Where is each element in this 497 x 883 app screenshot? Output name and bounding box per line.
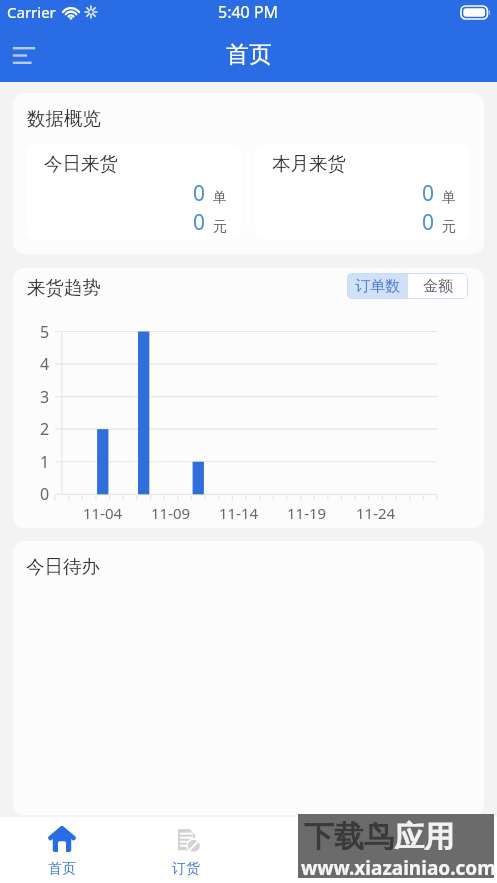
staticText: 订货 bbox=[172, 860, 200, 878]
staticText: 今日待办 bbox=[26, 555, 100, 578]
staticText: 11-24 bbox=[356, 503, 396, 523]
staticText: 来货趋势 bbox=[27, 276, 101, 299]
staticText: 首页 bbox=[48, 860, 76, 878]
staticText: 5 bbox=[40, 321, 50, 343]
button[interactable]: 订货 bbox=[124, 817, 248, 883]
button[interactable]: 首页 bbox=[0, 817, 124, 883]
staticText: 0 bbox=[422, 208, 435, 237]
staticText: 11-09 bbox=[151, 503, 191, 523]
staticText: 订单数 bbox=[355, 277, 400, 296]
staticText: 0 bbox=[193, 179, 206, 208]
staticText: 4 bbox=[40, 353, 50, 375]
staticText: 5:40 PM bbox=[218, 1, 279, 23]
staticText: 首页 bbox=[226, 40, 272, 69]
staticText: 本月来货 bbox=[272, 152, 346, 175]
staticText: 11-04 bbox=[83, 503, 123, 523]
staticText: 单 bbox=[442, 189, 456, 207]
button[interactable]: 本月来货 bbox=[255, 144, 470, 239]
button[interactable]: Menu bbox=[2, 33, 46, 77]
staticText: 元 bbox=[213, 218, 227, 236]
staticText: Carrier bbox=[7, 2, 56, 22]
staticText: 今日来货 bbox=[44, 152, 118, 175]
staticText: 1 bbox=[40, 451, 50, 473]
staticText: 11-14 bbox=[219, 503, 259, 523]
staticText: www.xiazainiao.com bbox=[301, 855, 496, 881]
staticText: 11-19 bbox=[287, 503, 327, 523]
staticText: 数据概览 bbox=[27, 107, 101, 130]
button[interactable]: 金额 bbox=[408, 273, 468, 299]
staticText: 下载鸟 bbox=[304, 818, 394, 850]
staticText: 元 bbox=[442, 218, 456, 236]
staticText: 应用 bbox=[394, 818, 454, 850]
staticText: 单 bbox=[213, 189, 227, 207]
button[interactable]: 今日来货 bbox=[27, 144, 241, 239]
button[interactable]: 订单数 bbox=[347, 273, 408, 299]
staticText: 0 bbox=[193, 208, 206, 237]
staticText: 0 bbox=[422, 179, 435, 208]
staticText: 金额 bbox=[423, 277, 453, 296]
staticText: 2 bbox=[40, 418, 50, 440]
staticText: 0 bbox=[40, 483, 50, 505]
staticText: 3 bbox=[40, 386, 50, 408]
